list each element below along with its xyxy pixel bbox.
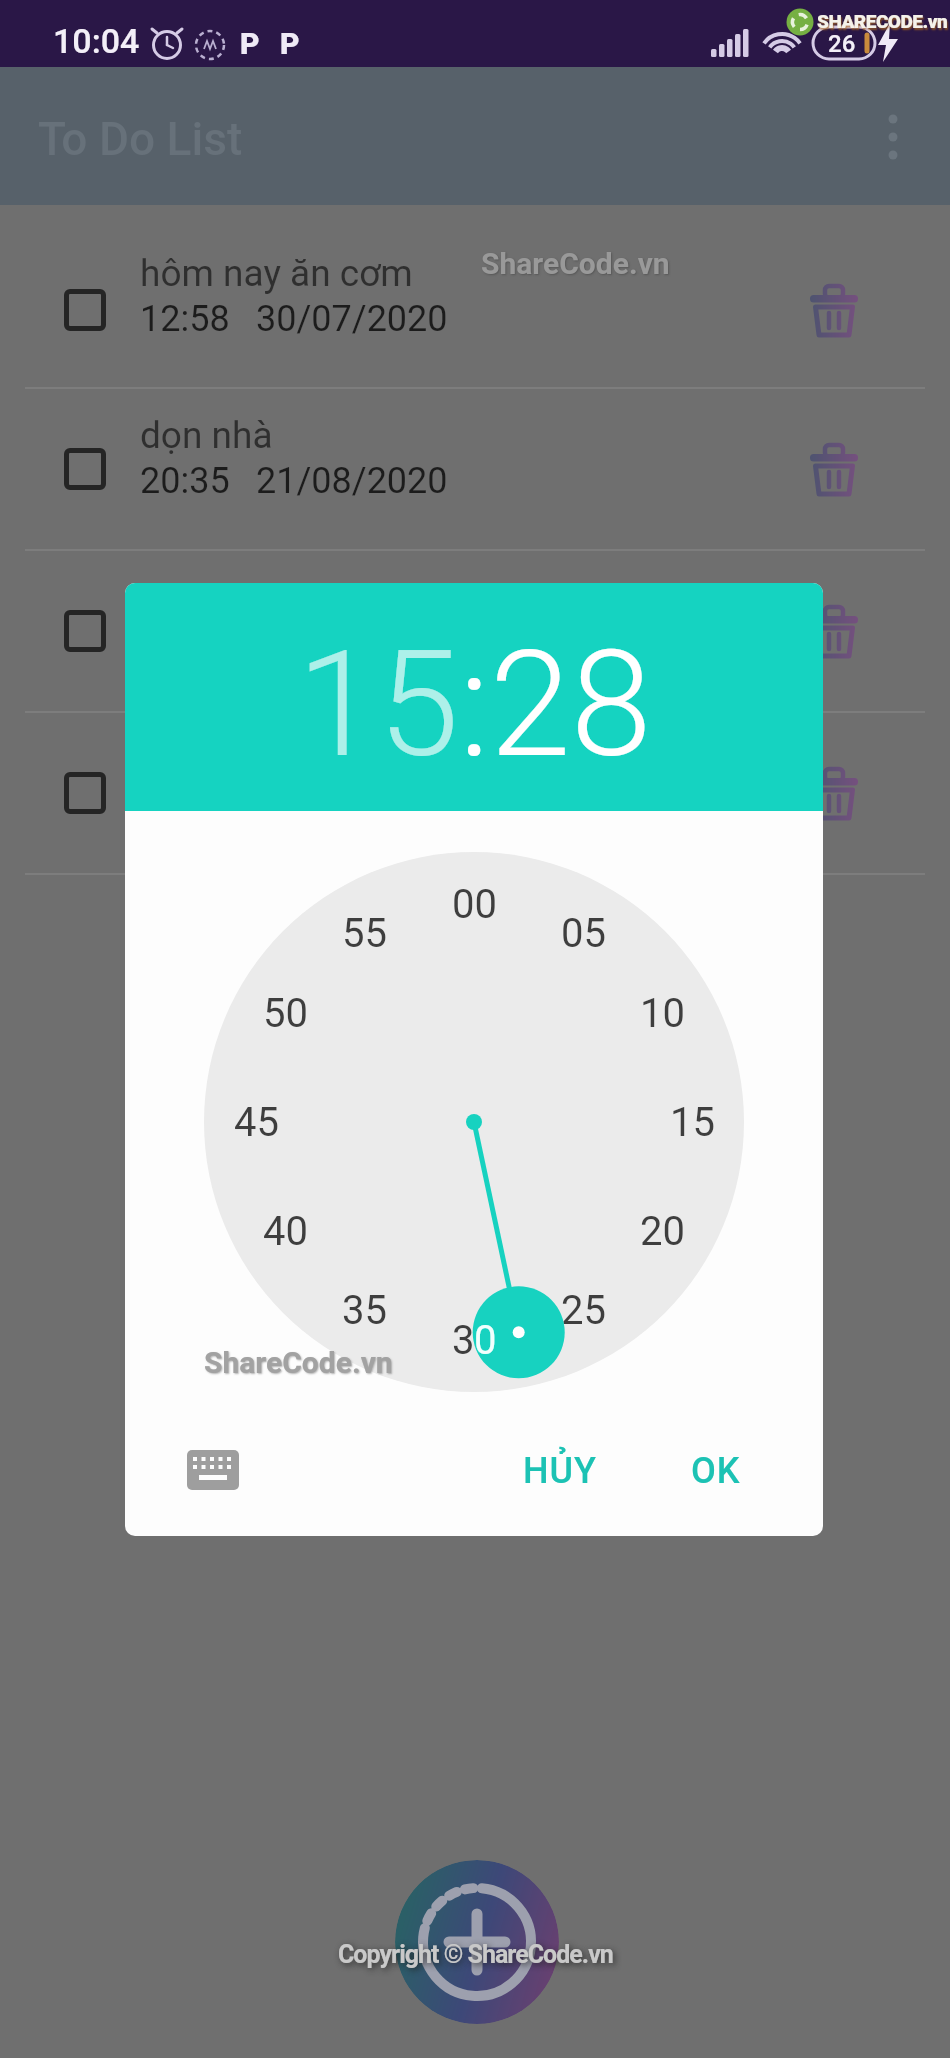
button[interactable]: OK	[646, 1431, 786, 1511]
staticText: To Do List	[38, 112, 243, 166]
button[interactable]	[808, 442, 860, 498]
button[interactable]	[64, 448, 106, 490]
button[interactable]	[64, 610, 106, 652]
staticText: P	[240, 26, 260, 61]
button[interactable]: HỦY	[480, 1431, 640, 1511]
button[interactable]	[808, 283, 860, 339]
button[interactable]	[808, 604, 860, 660]
staticText: 26	[828, 30, 856, 58]
staticText: Copyright © ShareCode.vn	[338, 1940, 613, 1969]
staticText: 40	[263, 1208, 308, 1255]
staticText: HỦY	[523, 1450, 598, 1492]
staticText: ShareCode.vn	[204, 1345, 393, 1380]
staticText: 00	[452, 881, 497, 928]
staticText: dọn nhà	[140, 414, 273, 457]
staticText: 45	[234, 1099, 279, 1146]
button[interactable]	[187, 1448, 239, 1492]
staticText: 50	[263, 990, 308, 1037]
staticText: 30	[452, 1317, 497, 1364]
staticText: 15	[670, 1099, 715, 1146]
staticText: 05	[561, 910, 606, 957]
button[interactable]	[64, 772, 106, 814]
staticText: 10	[640, 990, 685, 1037]
staticText: 15	[297, 620, 459, 791]
staticText: 55	[342, 910, 387, 957]
staticText: 20:35	[140, 460, 230, 502]
staticText: hôm nay ăn cơm	[140, 252, 413, 295]
staticText: P	[280, 26, 300, 61]
button[interactable]	[0, 388, 950, 550]
button[interactable]	[0, 205, 950, 388]
button[interactable]	[808, 766, 860, 822]
staticText: 0	[474, 1317, 497, 1364]
staticText: 20	[640, 1208, 685, 1255]
staticText: SHARECODE.vn	[817, 10, 948, 32]
staticText: 25	[561, 1287, 606, 1334]
staticText: 35	[342, 1287, 387, 1334]
staticText: OK	[691, 1450, 741, 1492]
staticText: :28	[459, 620, 652, 791]
button[interactable]	[871, 107, 915, 165]
staticText: 21/08/2020	[256, 460, 448, 502]
button[interactable]	[64, 289, 106, 331]
staticText: ShareCode.vn	[481, 246, 670, 281]
staticText: 12:58	[140, 298, 230, 340]
button[interactable]	[395, 1860, 559, 2024]
staticText: 30/07/2020	[256, 298, 448, 340]
staticText: 10:04	[53, 21, 140, 61]
